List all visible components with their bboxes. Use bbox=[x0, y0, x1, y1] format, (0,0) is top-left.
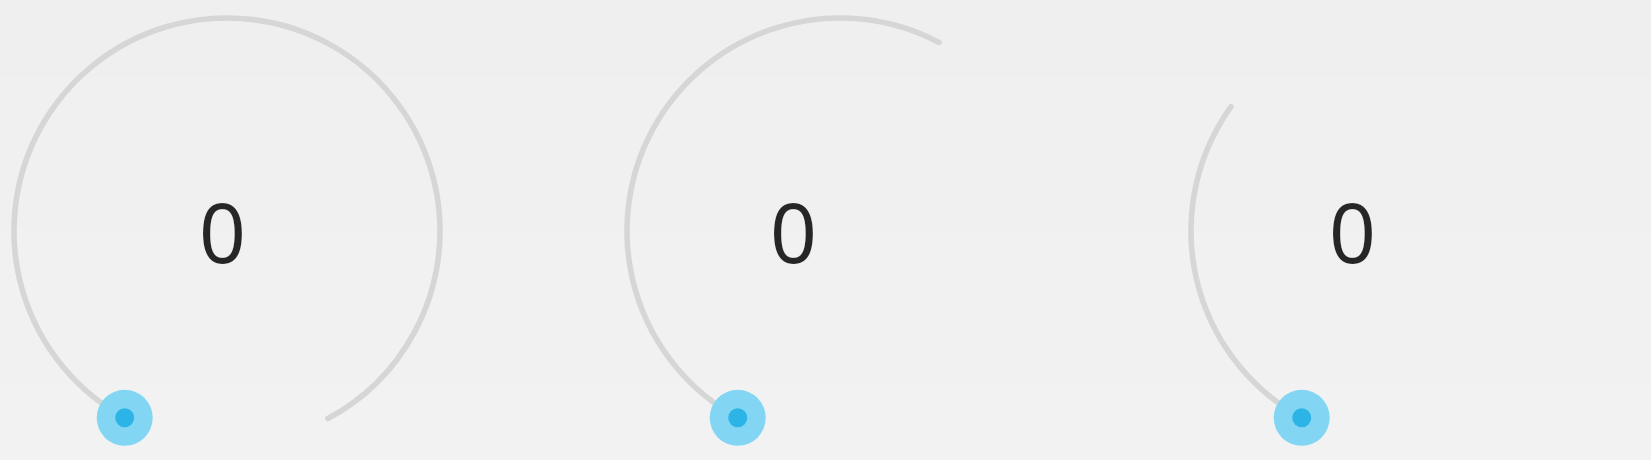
button[interactable]: Circular slider, value 0 bbox=[1065, 0, 1651, 460]
staticText: 0 bbox=[1329, 175, 1376, 287]
staticText: 0 bbox=[199, 175, 246, 287]
staticText: 0 bbox=[770, 175, 817, 287]
button[interactable]: Circular slider, value 0 bbox=[505, 0, 1065, 460]
button[interactable]: Circular slider, value 0 bbox=[0, 0, 505, 460]
